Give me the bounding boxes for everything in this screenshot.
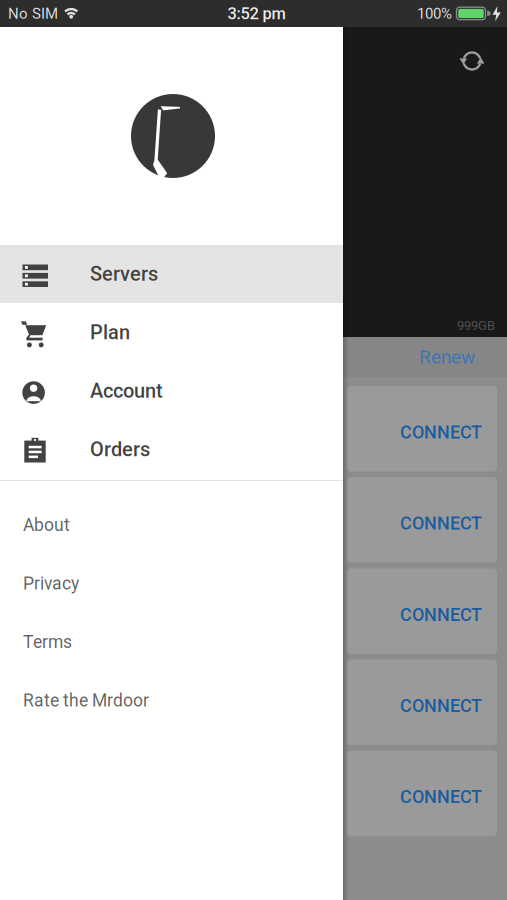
staticText: Account [90, 379, 163, 403]
button[interactable]: Connect [346, 750, 497, 836]
staticText: 3:52 pm [227, 4, 285, 23]
button[interactable]: About [0, 511, 343, 539]
button[interactable]: Terms [0, 628, 343, 656]
button[interactable]: Account [0, 362, 343, 420]
staticText: 100% [417, 5, 452, 22]
button[interactable]: Connect [346, 477, 497, 562]
staticText: Plan [90, 321, 130, 344]
staticText: Terms [23, 632, 72, 652]
button[interactable]: Orders [0, 420, 343, 478]
button[interactable]: Plan [0, 303, 343, 361]
button[interactable]: Refresh [452, 41, 492, 81]
staticText: Rate the Mrdoor [23, 690, 149, 711]
staticText: CONNECT [400, 695, 482, 716]
button[interactable]: Connect [346, 568, 497, 654]
staticText: CONNECT [400, 604, 482, 625]
staticText: CONNECT [400, 786, 482, 807]
staticText: Renew [419, 346, 475, 368]
staticText: CONNECT [400, 422, 482, 443]
button[interactable]: Renew [343, 337, 507, 377]
staticText: 999GB [457, 318, 495, 333]
staticText: Privacy [23, 573, 79, 594]
button[interactable]: Connect [346, 659, 497, 745]
button[interactable]: Servers [0, 245, 343, 303]
staticText: CONNECT [400, 513, 482, 534]
staticText: No SIM [8, 5, 58, 22]
staticText: Servers [90, 262, 158, 286]
staticText: Orders [90, 438, 150, 461]
staticText: About [23, 515, 70, 535]
button[interactable]: Privacy [0, 569, 343, 597]
button[interactable]: Rate the Mrdoor [0, 686, 343, 714]
button[interactable]: Connect [346, 386, 497, 471]
